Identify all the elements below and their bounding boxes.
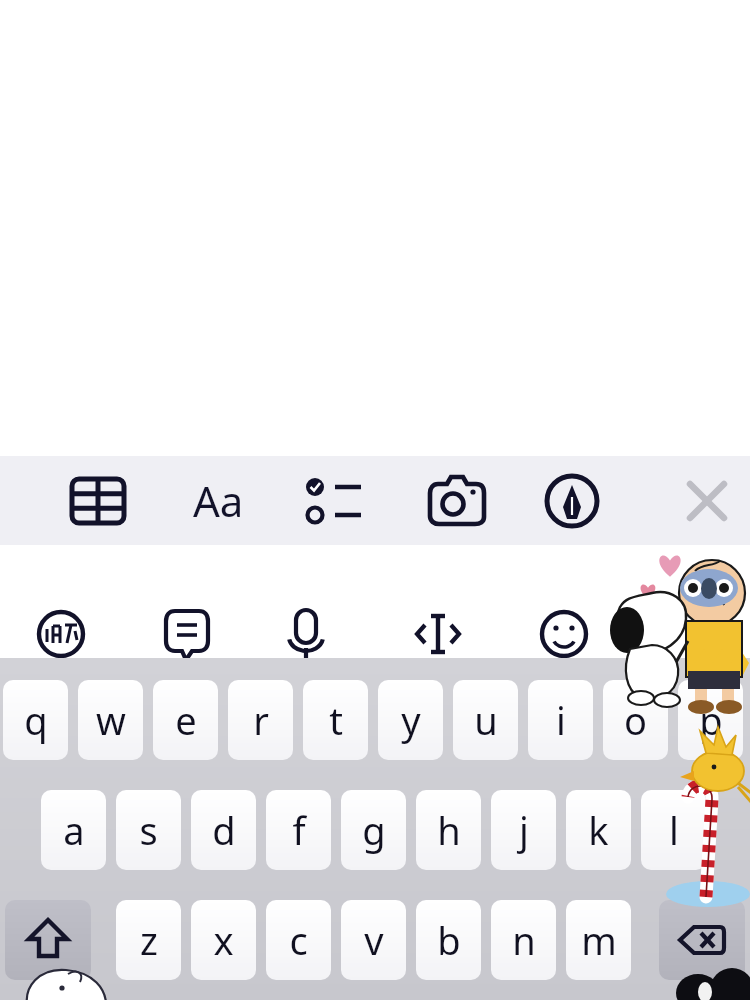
button[interactable]: Markup [536, 465, 608, 537]
button[interactable]: Move cursor [402, 601, 474, 667]
button[interactable]: Camera [421, 465, 493, 537]
button[interactable]: Close [671, 465, 743, 537]
staticText: l [669, 804, 679, 856]
button[interactable]: Voice input [270, 601, 342, 667]
staticText: f [292, 804, 306, 856]
staticText: p [699, 694, 723, 746]
staticText: r [253, 694, 269, 746]
button[interactable]: p [678, 680, 743, 760]
staticText: d [212, 804, 236, 856]
staticText: g [362, 804, 386, 856]
button[interactable]: l [641, 790, 706, 870]
button[interactable]: Aa [172, 470, 264, 530]
staticText: Aa [193, 472, 244, 529]
staticText: a [63, 804, 85, 856]
button[interactable]: Backspace [659, 900, 745, 980]
staticText: w [96, 694, 126, 746]
staticText: u [474, 694, 498, 746]
button[interactable]: Input method [25, 601, 97, 667]
button[interactable]: w [78, 680, 143, 760]
button[interactable]: x [191, 900, 256, 980]
staticText: x [213, 914, 234, 966]
button[interactable]: Table [62, 465, 134, 537]
staticText: e [175, 694, 197, 746]
button[interactable]: t [303, 680, 368, 760]
staticText: y [401, 694, 421, 746]
button[interactable]: Checklist [301, 465, 373, 537]
button[interactable]: o [603, 680, 668, 760]
button[interactable]: e [153, 680, 218, 760]
button[interactable]: q [3, 680, 68, 760]
staticText: t [329, 694, 343, 746]
staticText: s [139, 804, 158, 856]
button[interactable]: r [228, 680, 293, 760]
button[interactable]: i [528, 680, 593, 760]
button[interactable]: j [491, 790, 556, 870]
staticText: n [512, 914, 536, 966]
staticText: j [519, 804, 529, 856]
button[interactable]: Shift [5, 900, 91, 980]
staticText: o [624, 694, 647, 746]
button[interactable]: d [191, 790, 256, 870]
staticText: i [556, 694, 566, 746]
button[interactable]: Phrases [151, 601, 223, 667]
button[interactable]: u [453, 680, 518, 760]
button[interactable]: s [116, 790, 181, 870]
staticText: k [588, 804, 609, 856]
button[interactable]: z [116, 900, 181, 980]
button[interactable]: n [491, 900, 556, 980]
button[interactable]: m [566, 900, 631, 980]
button[interactable]: a [41, 790, 106, 870]
staticText: m [581, 914, 617, 966]
button[interactable]: y [378, 680, 443, 760]
button[interactable]: b [416, 900, 481, 980]
staticText: b [437, 914, 461, 966]
staticText: v [364, 914, 384, 966]
button[interactable]: Emoji [528, 601, 600, 667]
button[interactable]: h [416, 790, 481, 870]
button[interactable]: f [266, 790, 331, 870]
staticText: c [289, 914, 308, 966]
button[interactable]: c [266, 900, 331, 980]
staticText: z [140, 914, 158, 966]
staticText: q [24, 694, 48, 746]
button[interactable]: v [341, 900, 406, 980]
button[interactable]: g [341, 790, 406, 870]
button[interactable]: k [566, 790, 631, 870]
staticText: h [437, 804, 461, 856]
